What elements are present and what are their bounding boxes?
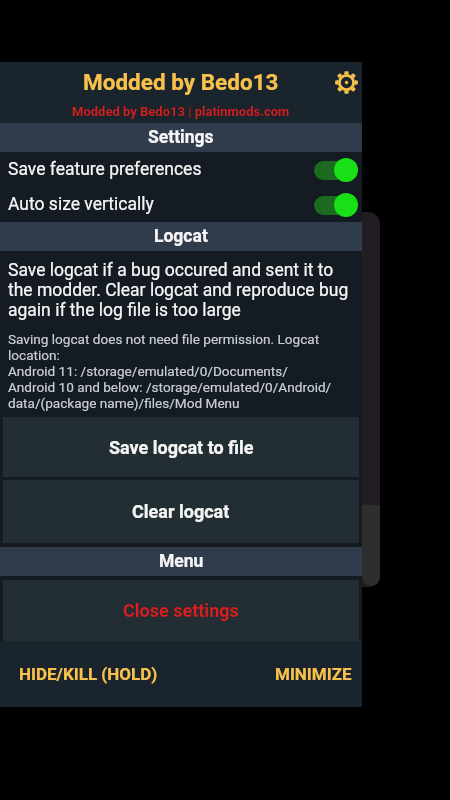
staticText: MINIMIZE (275, 664, 352, 684)
button[interactable]: Clear logcat (3, 480, 359, 543)
staticText: Close settings (123, 600, 239, 621)
button[interactable]: MINIMIZE (273, 654, 354, 694)
staticText: Save logcat if a bug occured and sent it… (8, 260, 354, 320)
staticText: Modded by Bedo13 (83, 69, 279, 95)
staticText: HIDE/KILL (HOLD) (19, 664, 158, 684)
button[interactable]: Auto size vertically (0, 187, 362, 222)
staticText: Logcat (154, 226, 208, 247)
button[interactable]: Save logcat to file (3, 417, 359, 477)
staticText: Save feature preferences (8, 159, 313, 180)
staticText: Saving logcat does not need file permiss… (8, 331, 354, 411)
staticText: Settings (148, 127, 214, 148)
button[interactable]: HIDE/KILL (HOLD) (17, 654, 160, 694)
button[interactable]: Settings (335, 71, 358, 94)
staticText: Menu (159, 551, 204, 572)
staticText: Modded by Bedo13 | platinmods.com (72, 104, 290, 119)
staticText: Clear logcat (132, 501, 230, 522)
staticText: Save logcat to file (109, 437, 254, 458)
staticText: Auto size vertically (8, 194, 313, 215)
button[interactable]: Close settings (3, 580, 359, 641)
button[interactable]: Save feature preferences (0, 152, 362, 187)
